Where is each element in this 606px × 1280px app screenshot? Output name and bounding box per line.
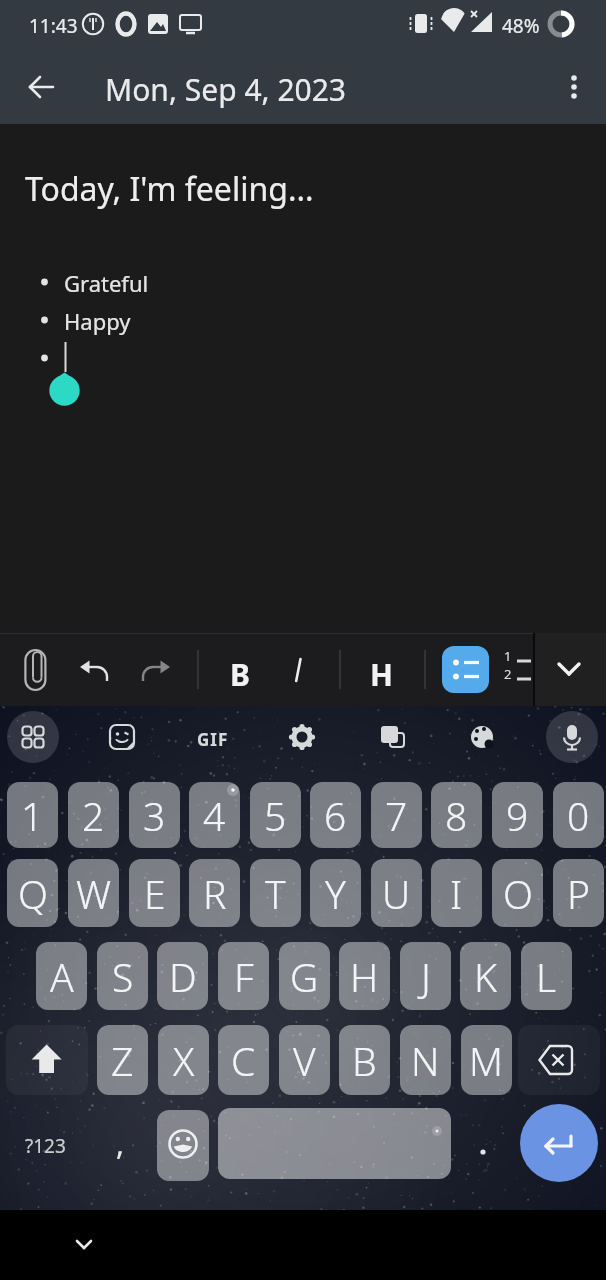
button[interactable] xyxy=(535,633,606,706)
staticText: GIF xyxy=(197,728,229,751)
button[interactable]: L xyxy=(521,942,572,1010)
button[interactable]: 4 xyxy=(189,782,240,848)
staticText: 0 xyxy=(567,789,590,842)
button[interactable]: 3 xyxy=(129,782,180,848)
button[interactable] xyxy=(60,1220,108,1268)
button[interactable] xyxy=(520,1104,598,1182)
staticText: , xyxy=(116,1123,125,1164)
staticText: O xyxy=(503,867,533,920)
button[interactable] xyxy=(74,647,118,691)
staticText: C xyxy=(231,1034,256,1087)
button[interactable]: G xyxy=(279,942,330,1010)
button[interactable]: T xyxy=(250,859,301,927)
button[interactable]: P xyxy=(553,859,604,927)
staticText: M xyxy=(469,1034,504,1087)
button[interactable]: S xyxy=(97,942,148,1010)
staticText: B xyxy=(352,1034,377,1087)
staticText: L xyxy=(536,950,557,1003)
button[interactable]: 2 xyxy=(68,782,119,848)
staticText: Grateful xyxy=(64,268,149,298)
button[interactable] xyxy=(16,62,66,112)
button[interactable] xyxy=(218,1108,451,1179)
button[interactable] xyxy=(157,1110,209,1181)
button[interactable]: E xyxy=(129,859,180,927)
button[interactable]: O xyxy=(492,859,543,927)
staticText: Y xyxy=(325,867,346,920)
button[interactable]: Q xyxy=(7,859,58,927)
staticText: G xyxy=(290,950,319,1003)
button[interactable]: 9 xyxy=(492,782,543,848)
button[interactable]: H xyxy=(339,942,390,1010)
button[interactable] xyxy=(14,647,58,691)
button[interactable] xyxy=(17,1032,75,1088)
button[interactable] xyxy=(216,647,260,691)
button[interactable]: B xyxy=(339,1025,390,1095)
staticText: T xyxy=(265,867,286,920)
staticText: 1 xyxy=(21,789,44,842)
staticText: 6 xyxy=(324,789,347,842)
staticText: I xyxy=(450,867,463,920)
staticText: F xyxy=(234,950,254,1003)
button[interactable]: M xyxy=(461,1025,512,1095)
button[interactable]: 5 xyxy=(250,782,301,848)
button[interactable]: X xyxy=(158,1025,209,1095)
staticText: E xyxy=(144,867,166,920)
staticText: Mon, Sep 4, 2023 xyxy=(105,69,347,110)
button[interactable]: U xyxy=(371,859,422,927)
staticText: 1 xyxy=(504,647,512,665)
button[interactable]: F xyxy=(218,942,269,1010)
button[interactable] xyxy=(276,647,320,691)
button[interactable] xyxy=(276,711,328,763)
button[interactable]: K xyxy=(460,942,511,1010)
button[interactable]: D xyxy=(157,942,208,1010)
staticText: ?123 xyxy=(25,1133,66,1159)
button[interactable]: V xyxy=(279,1025,330,1095)
button[interactable] xyxy=(7,711,59,763)
button[interactable]: C xyxy=(218,1025,269,1095)
button[interactable] xyxy=(359,647,403,691)
staticText: D xyxy=(169,950,197,1003)
staticText: K xyxy=(474,950,497,1003)
button[interactable]: Z xyxy=(97,1025,148,1095)
button[interactable] xyxy=(366,711,418,763)
staticText: 2 xyxy=(82,789,105,842)
button[interactable] xyxy=(95,711,147,763)
staticText: A xyxy=(50,950,74,1003)
button[interactable] xyxy=(528,1032,586,1088)
staticText: 8 xyxy=(445,789,468,842)
staticText: Happy xyxy=(64,306,131,336)
staticText: 3 xyxy=(143,789,166,842)
button[interactable]: 1 xyxy=(7,782,58,848)
button[interactable]: 8 xyxy=(431,782,482,848)
staticText: Today, I'm feeling... xyxy=(25,167,314,211)
button[interactable] xyxy=(546,711,598,763)
button[interactable] xyxy=(133,647,177,691)
button[interactable]: A xyxy=(36,942,87,1010)
button[interactable] xyxy=(8,1108,78,1179)
staticText: 4 xyxy=(203,789,226,842)
button[interactable]: R xyxy=(189,859,240,927)
button[interactable]: W xyxy=(68,859,119,927)
staticText: U xyxy=(382,867,411,920)
button[interactable] xyxy=(442,646,489,693)
button[interactable]: 0 xyxy=(553,782,604,848)
staticText: B xyxy=(230,654,250,695)
button[interactable]: 7 xyxy=(371,782,422,848)
button[interactable]: I xyxy=(431,859,482,927)
staticText: R xyxy=(203,867,227,920)
button[interactable] xyxy=(550,62,598,112)
staticText: H xyxy=(350,950,379,1003)
button[interactable] xyxy=(495,647,535,691)
staticText: N xyxy=(411,1034,440,1087)
button[interactable]: J xyxy=(400,942,451,1010)
button[interactable] xyxy=(186,711,238,763)
staticText: Q xyxy=(18,867,48,920)
button[interactable]: 6 xyxy=(310,782,361,848)
button[interactable] xyxy=(462,1108,512,1179)
button[interactable] xyxy=(456,711,508,763)
staticText: 2 xyxy=(504,665,512,683)
button[interactable]: Y xyxy=(310,859,361,927)
staticText: H xyxy=(370,654,393,695)
button[interactable]: N xyxy=(400,1025,451,1095)
staticText: 5 xyxy=(264,789,287,842)
